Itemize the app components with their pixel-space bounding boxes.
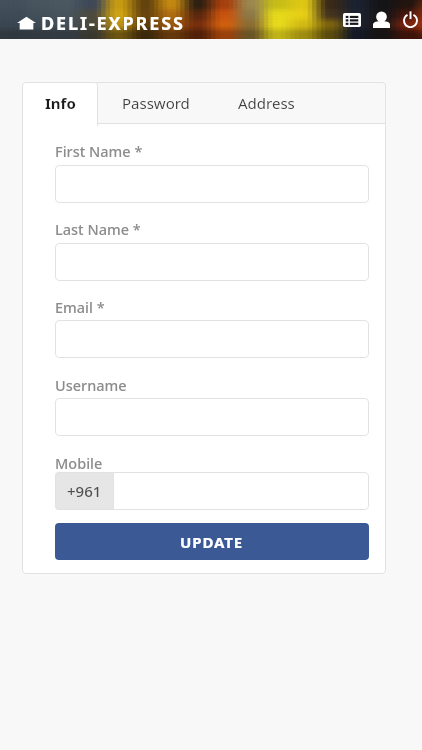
staticText: Username <box>55 375 127 395</box>
button[interactable]: UPDATE <box>55 523 369 560</box>
button[interactable]: Orders <box>340 8 364 32</box>
staticText: Info <box>45 93 76 113</box>
button[interactable]: Address <box>214 82 319 124</box>
staticText: +961 <box>67 481 102 501</box>
button[interactable]: Mobile number <box>114 472 369 510</box>
staticText: Email * <box>55 297 105 317</box>
staticText: First Name * <box>55 141 143 161</box>
staticText: Address <box>238 93 295 113</box>
button[interactable]: Deli-Express home <box>17 5 185 39</box>
staticText: Password <box>122 93 190 113</box>
button[interactable]: Email * <box>55 320 369 358</box>
button[interactable]: Account <box>369 8 393 32</box>
staticText: DELI-EXPRESS <box>41 11 185 36</box>
button[interactable]: Last Name * <box>55 243 369 281</box>
button[interactable]: Username <box>55 398 369 436</box>
staticText: Last Name * <box>55 219 141 239</box>
button[interactable]: Password <box>98 82 214 124</box>
button[interactable]: Logout <box>398 8 422 32</box>
staticText: UPDATE <box>180 532 244 552</box>
button[interactable]: First Name * <box>55 165 369 203</box>
button[interactable] <box>22 82 98 126</box>
staticText: Mobile <box>55 453 103 473</box>
